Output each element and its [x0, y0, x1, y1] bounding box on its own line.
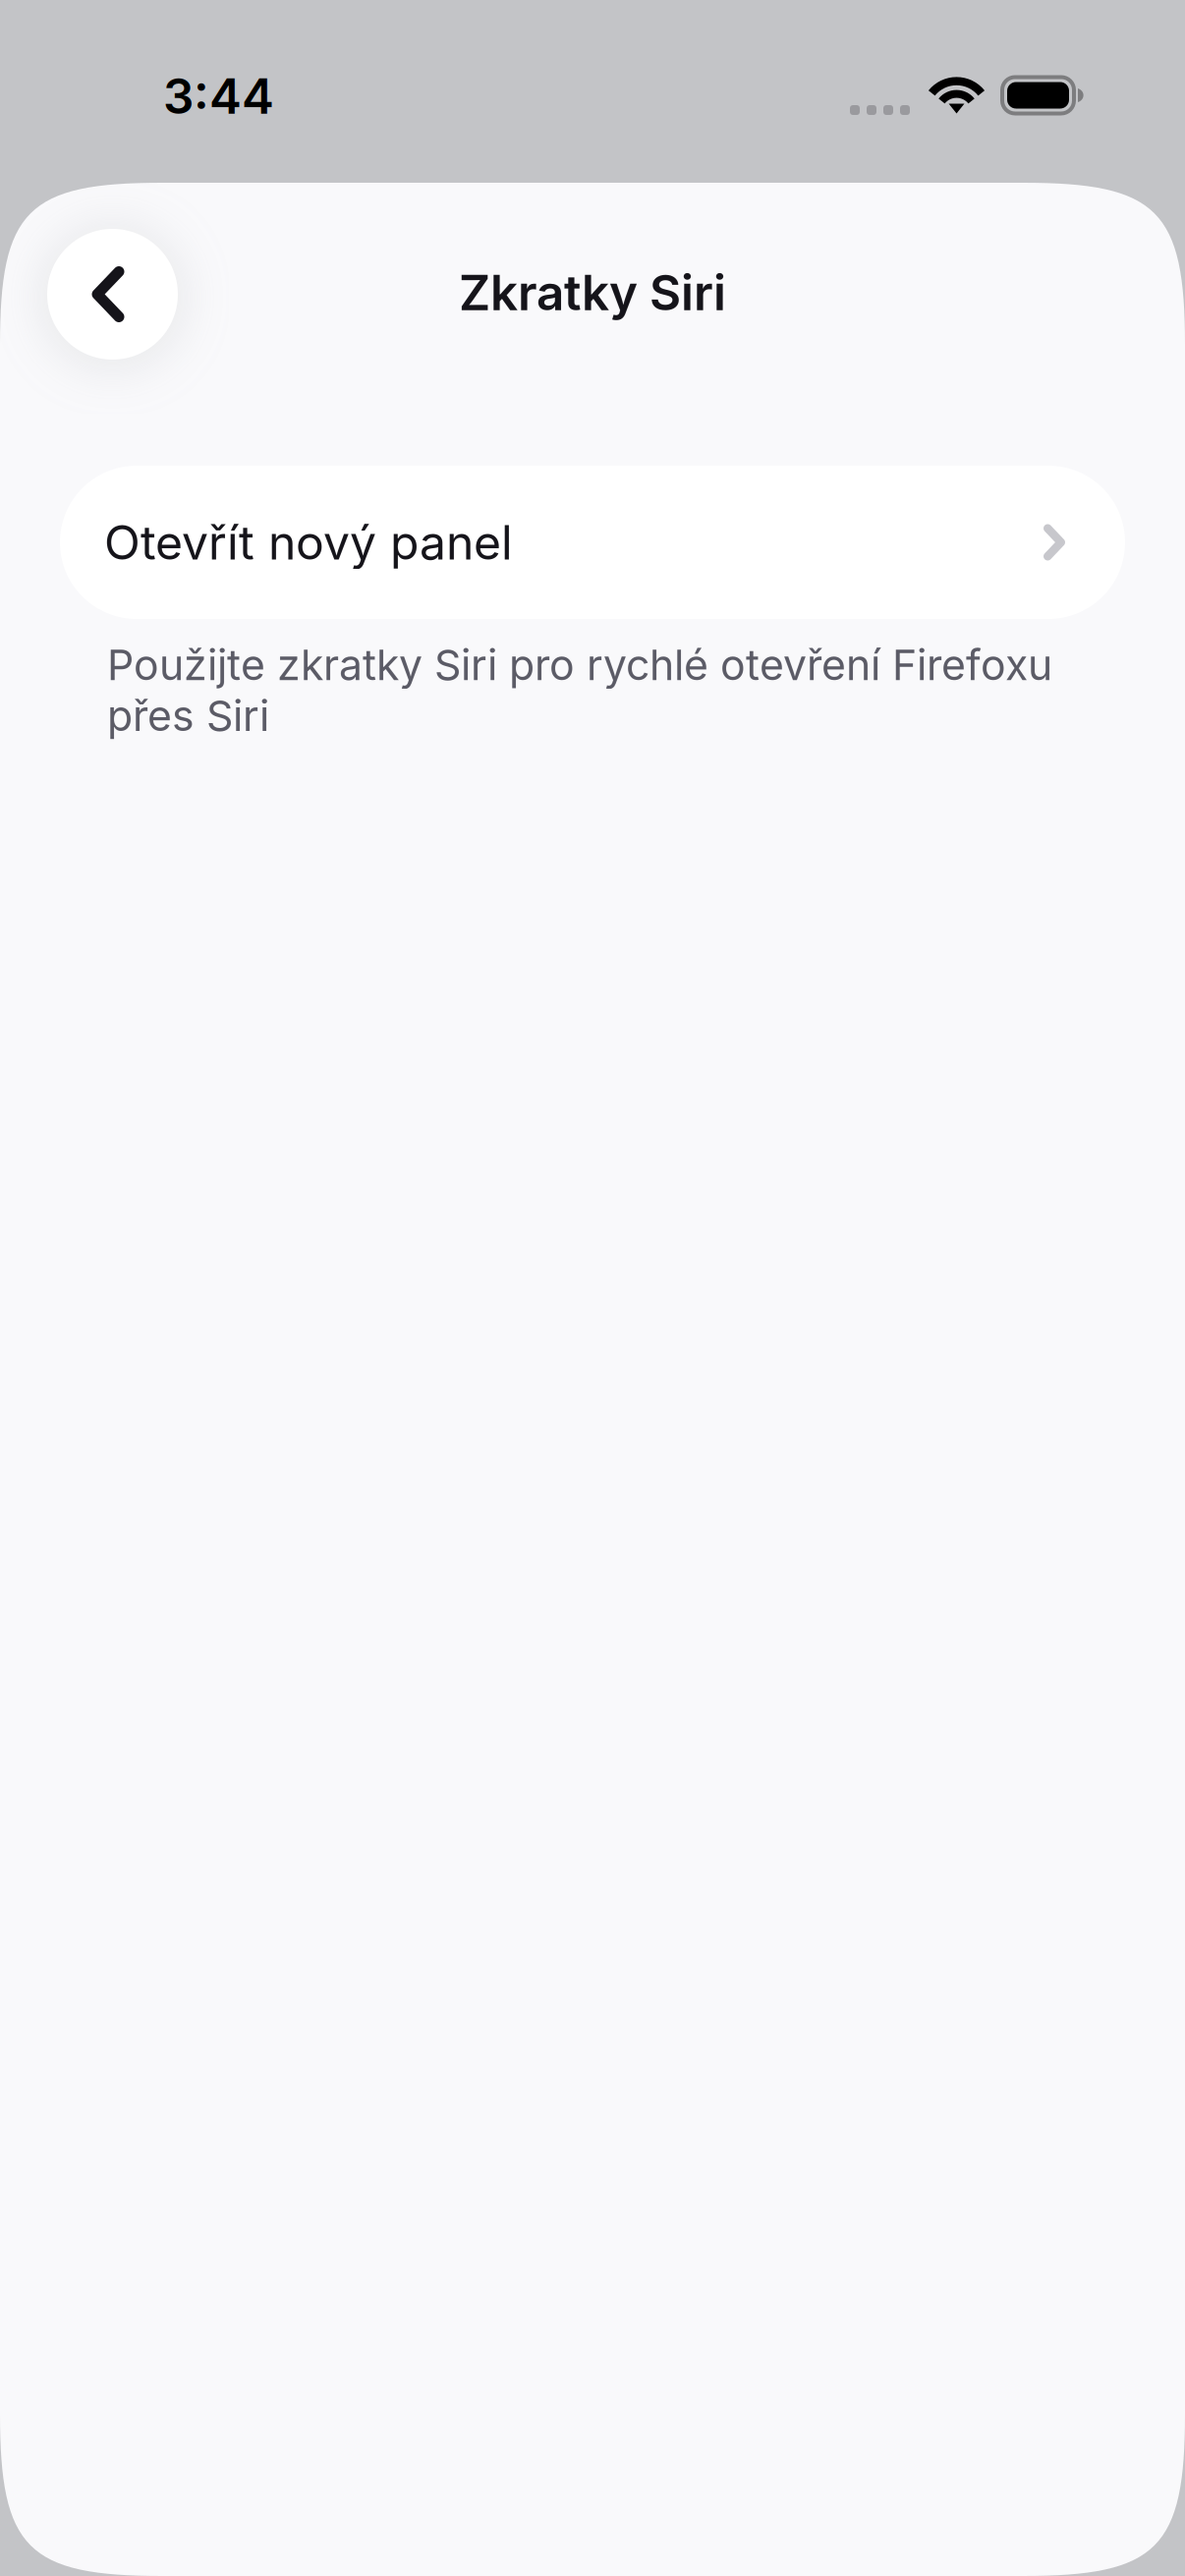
staticText: Zkratky Siri	[459, 263, 726, 322]
button[interactable]: Back	[47, 229, 178, 360]
staticText: Použijte zkratky Siri pro rychlé otevřen…	[107, 640, 1052, 741]
staticText: Otevřít nový panel	[104, 514, 513, 571]
button[interactable]: Otevřít nový panel	[60, 466, 1125, 619]
staticText: 3:44	[163, 67, 274, 125]
